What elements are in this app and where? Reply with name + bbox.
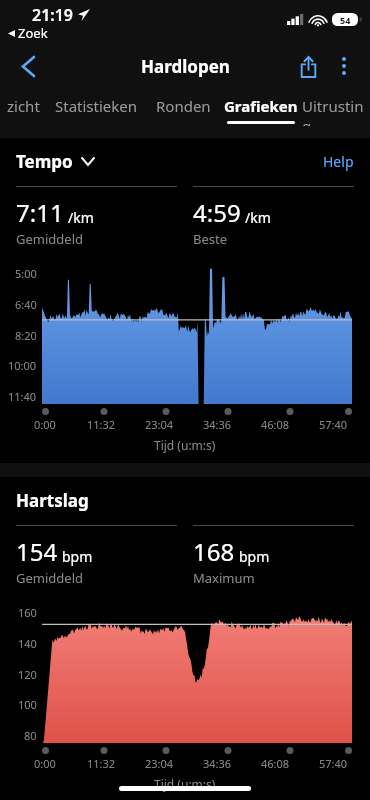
staticText: bpm [239,547,270,566]
staticText: Hartslag [16,489,89,512]
staticText: 21:19 [32,4,74,26]
staticText: 154 [16,535,58,568]
staticText: 11:40 [8,389,37,404]
staticText: 168 [193,535,235,568]
button[interactable]: zicht [0,88,46,126]
staticText: 160 [18,605,37,620]
staticText: 120 [18,667,37,682]
button[interactable]: Uitrusting [302,88,370,126]
staticText: 57:40 [319,417,348,432]
staticText: 6:40 [15,297,37,312]
staticText: 46:08 [261,756,290,771]
button[interactable]: Share [290,48,326,84]
staticText: 34:36 [203,417,232,432]
staticText: 0:00 [34,417,56,432]
staticText: 34:36 [203,756,232,771]
staticText: 100 [18,697,37,712]
staticText: Beste [193,230,228,248]
staticText: 23:04 [145,417,174,432]
staticText: 8:20 [15,328,37,343]
staticText: Zoek [18,24,48,42]
staticText: Statistieken [55,96,138,116]
staticText: Gemiddeld [16,230,83,248]
staticText: 11:32 [87,756,116,771]
button[interactable]: Statistieken [46,88,147,126]
staticText: Maximum [193,569,255,587]
staticText: Hardlopen [141,55,230,78]
button[interactable]: Help [323,152,354,171]
staticText: Ronden [156,96,211,116]
staticText: Gemiddeld [16,569,83,587]
button[interactable]: Back [10,48,46,84]
button[interactable]: More options [326,48,362,84]
staticText: 23:04 [145,756,174,771]
staticText: 0:00 [34,756,56,771]
staticText: 4:59 [193,196,241,229]
staticText: Uitrusting [302,96,370,126]
staticText: 7:11 [16,196,64,229]
staticText: Help [323,152,354,171]
button[interactable]: Grafieken [219,88,302,126]
staticText: 10:00 [8,358,37,373]
staticText: 5:00 [15,266,37,281]
button[interactable]: Ronden [147,88,219,126]
staticText: 80 [24,728,37,743]
staticText: /km [68,208,94,227]
staticText: Tempo [16,150,73,173]
staticText: /km [245,208,271,227]
staticText: 57:40 [319,756,348,771]
staticText: 54 [340,14,351,26]
staticText: Grafieken [224,96,298,116]
button[interactable]: Tempo [16,150,94,173]
button[interactable]: Hartslag [16,489,89,512]
staticText: zicht [7,96,40,116]
staticText: 11:32 [87,417,116,432]
staticText: 140 [18,636,37,651]
staticText: Tijd (u:m:s) [154,437,216,453]
staticText: bpm [62,547,93,566]
staticText: 46:08 [261,417,290,432]
staticText: Tijd (u:m:s) [154,776,216,792]
